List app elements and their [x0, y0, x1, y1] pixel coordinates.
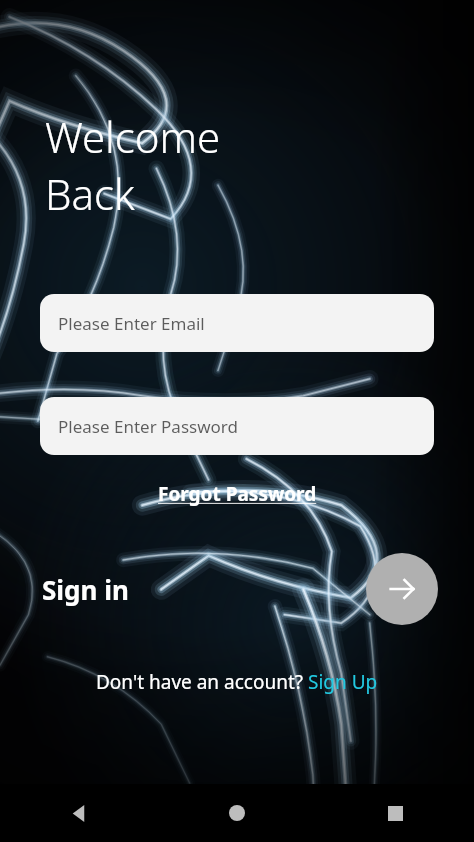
button[interactable]: Back: [0, 784, 158, 842]
button[interactable]: Home: [158, 784, 316, 842]
staticText: Back: [45, 165, 135, 222]
staticText: Please Enter Email: [58, 312, 205, 335]
staticText: Don't have an account? Sign Up: [96, 669, 378, 695]
button[interactable]: Sign in: [366, 553, 438, 625]
staticText: Forgot Password: [158, 481, 317, 507]
button[interactable]: Recent apps: [316, 784, 474, 842]
button[interactable]: Forgot Password: [152, 479, 323, 509]
button[interactable]: Please Enter Email: [40, 294, 434, 352]
staticText: Please Enter Password: [58, 415, 238, 438]
button[interactable]: Please Enter Password: [40, 397, 434, 455]
staticText: Welcome: [45, 108, 221, 165]
button[interactable]: Don't have an account? Sign Up: [92, 667, 382, 697]
staticText: Sign in: [42, 572, 129, 607]
button[interactable]: Sign in: [42, 572, 129, 607]
